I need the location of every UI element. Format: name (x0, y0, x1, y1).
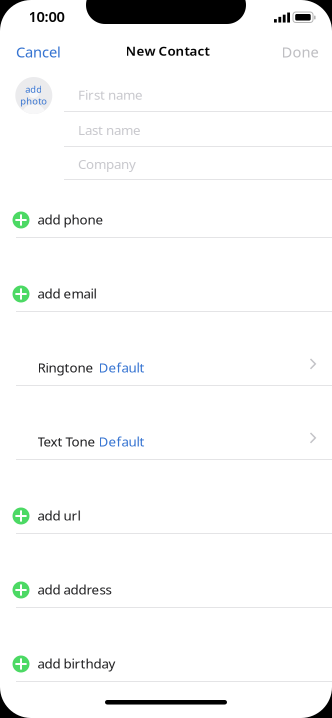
button[interactable]: Company (64, 147, 332, 180)
button[interactable]: add photo (15, 77, 52, 114)
staticText: First name (78, 86, 143, 103)
staticText: 10:00 (28, 7, 64, 26)
button[interactable]: First name (64, 77, 332, 112)
button[interactable]: Done (266, 38, 332, 72)
staticText: add address (37, 580, 111, 598)
button[interactable]: add birthday (0, 638, 332, 682)
button[interactable]: add phone (0, 194, 332, 238)
staticText: photo (20, 95, 47, 107)
button[interactable]: add email (0, 268, 332, 312)
staticText: New Contact (125, 42, 209, 59)
staticText: Text Tone (37, 432, 95, 450)
button[interactable]: add url (0, 490, 332, 534)
staticText: add phone (37, 210, 103, 228)
staticText: Company (78, 155, 136, 173)
button[interactable]: Text Tone (0, 416, 332, 460)
button[interactable]: Cancel (0, 38, 76, 72)
staticText: Last name (78, 121, 141, 139)
staticText: add email (37, 284, 96, 302)
staticText: add (25, 83, 42, 95)
button[interactable]: Ringtone (0, 342, 332, 386)
staticText: Default (98, 358, 144, 376)
staticText: add birthday (37, 654, 115, 672)
staticText: Done (281, 42, 318, 62)
staticText: Cancel (16, 42, 61, 62)
button[interactable]: Last name (64, 112, 332, 147)
staticText: add url (37, 506, 80, 524)
staticText: Default (98, 432, 144, 450)
staticText: Ringtone (37, 358, 93, 376)
button[interactable]: add address (0, 564, 332, 608)
